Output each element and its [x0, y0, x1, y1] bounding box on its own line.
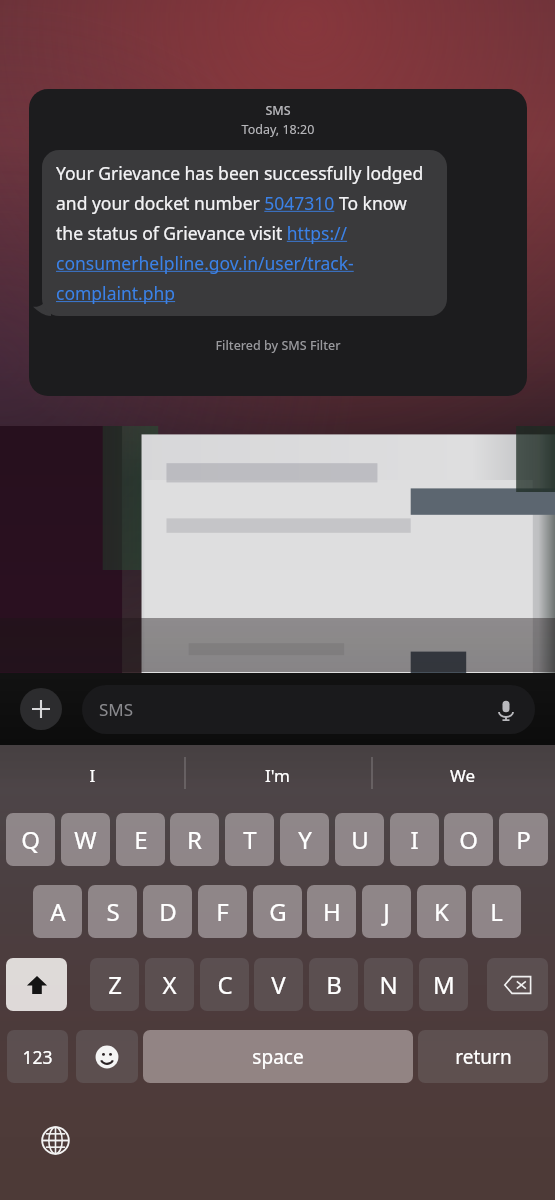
button[interactable]: V [254, 958, 303, 1011]
button[interactable]: W [61, 813, 110, 866]
button[interactable]: N [364, 958, 413, 1011]
staticText: S [106, 895, 120, 928]
button[interactable]: C [200, 958, 249, 1011]
button[interactable]: U [335, 813, 384, 866]
staticText: M [433, 968, 455, 1001]
button[interactable]: H [307, 885, 356, 938]
button[interactable]: S [88, 885, 137, 938]
staticText: T [243, 823, 257, 856]
button[interactable]: Add attachment [20, 688, 62, 730]
button[interactable]: SMS [82, 685, 535, 734]
staticText: SMS [99, 698, 134, 721]
staticText: R [187, 823, 202, 856]
staticText: D [159, 895, 177, 928]
staticText: Q [21, 823, 40, 856]
staticText: space [252, 1044, 304, 1070]
button[interactable]: L [472, 885, 521, 938]
staticText: Your Grievance has been successfully lod… [56, 161, 433, 305]
staticText: N [379, 968, 398, 1001]
button[interactable]: A [33, 885, 82, 938]
staticText: O [459, 823, 478, 856]
button[interactable]: Backspace [487, 958, 548, 1011]
button[interactable]: Emoji [76, 1030, 138, 1083]
button[interactable]: Switch keyboard [34, 1119, 76, 1161]
staticText: F [216, 895, 229, 928]
button[interactable]: O [444, 813, 493, 866]
button[interactable]: Y [280, 813, 329, 866]
button[interactable]: I'm [235, 764, 320, 787]
button[interactable]: B [309, 958, 358, 1011]
button[interactable]: T [225, 813, 274, 866]
staticText: K [434, 895, 449, 928]
button[interactable]: P [499, 813, 548, 866]
staticText: Today, 18:20 [29, 121, 527, 138]
staticText: 123 [22, 1045, 53, 1069]
button[interactable]: F [198, 885, 247, 938]
staticText: L [490, 895, 503, 928]
staticText: E [134, 823, 148, 856]
button[interactable]: E [116, 813, 165, 866]
staticText: return [455, 1044, 512, 1070]
button[interactable]: R [170, 813, 219, 866]
staticText: C [217, 968, 233, 1001]
button[interactable]: I [50, 764, 135, 787]
staticText: A [50, 895, 66, 928]
button[interactable]: Z [90, 958, 139, 1011]
staticText: I [410, 823, 419, 856]
staticText: H [323, 895, 341, 928]
staticText: Filtered by SMS Filter [29, 337, 527, 354]
button[interactable]: X [145, 958, 194, 1011]
staticText: W [74, 823, 97, 856]
button[interactable]: M [419, 958, 468, 1011]
staticText: P [516, 823, 531, 856]
staticText: V [271, 968, 286, 1001]
staticText: U [351, 823, 369, 856]
button[interactable]: K [417, 885, 466, 938]
button[interactable]: SMS [29, 89, 527, 396]
staticText: Z [108, 968, 122, 1001]
staticText: SMS [29, 102, 527, 119]
staticText: G [269, 895, 287, 928]
button[interactable]: Q [6, 813, 55, 866]
button[interactable]: 123 [7, 1030, 68, 1083]
staticText: Y [298, 823, 312, 856]
button[interactable]: Shift [6, 958, 67, 1011]
staticText: B [326, 968, 342, 1001]
button[interactable]: We [420, 764, 505, 787]
button[interactable]: Dictate [491, 695, 521, 725]
staticText: J [383, 895, 390, 928]
staticText: X [162, 968, 177, 1001]
button[interactable]: space [143, 1030, 413, 1083]
button[interactable]: D [143, 885, 192, 938]
button[interactable]: return [418, 1030, 548, 1083]
button[interactable]: G [253, 885, 302, 938]
button[interactable]: I [390, 813, 439, 866]
button[interactable]: J [362, 885, 411, 938]
